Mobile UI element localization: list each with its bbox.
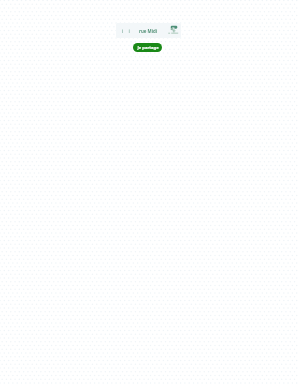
other: Logo <box>116 23 181 38</box>
staticText: rue Midi <box>139 28 158 34</box>
button[interactable]: Je partage <box>133 43 162 52</box>
button[interactable]: i i <box>116 23 181 38</box>
staticText: Je partage <box>137 45 159 51</box>
staticText: i i <box>122 28 130 35</box>
